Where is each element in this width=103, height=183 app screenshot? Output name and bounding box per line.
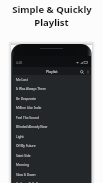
button[interactable]: Me Lost bbox=[13, 75, 91, 85]
staticText: Morning bbox=[16, 163, 29, 167]
staticText: Blinded Already Now bbox=[16, 125, 48, 129]
staticText: Feel The Sound bbox=[16, 116, 39, 120]
button[interactable]: More options bbox=[85, 69, 91, 75]
staticText: Playlist bbox=[34, 16, 69, 29]
button[interactable]: Blinded Already Now bbox=[13, 122, 91, 132]
staticText: Light bbox=[16, 135, 24, 139]
staticText: Saint Side bbox=[16, 154, 31, 158]
staticText: Me Lost bbox=[16, 78, 28, 82]
button[interactable]: Anthem Tells You bbox=[13, 179, 91, 183]
staticText: Anthem Tells You bbox=[16, 182, 42, 183]
button[interactable]: Of My Future bbox=[13, 141, 91, 151]
button[interactable]: Morning bbox=[13, 160, 91, 170]
staticText: Million Like Indie bbox=[16, 106, 42, 110]
button[interactable]: Slow It Down bbox=[13, 170, 91, 180]
button[interactable]: Light bbox=[13, 132, 91, 142]
staticText: 4:45 bbox=[16, 61, 23, 65]
button[interactable]: Be Desperate bbox=[13, 94, 91, 104]
button[interactable]: Million Like Indie bbox=[13, 103, 91, 113]
staticText: Slow It Down bbox=[16, 173, 36, 177]
staticText: Of My Future bbox=[16, 144, 36, 148]
staticText: It Was Always There bbox=[16, 87, 46, 91]
staticText: Simple & Quickly bbox=[12, 3, 92, 16]
button[interactable]: Search bbox=[78, 68, 85, 75]
staticText: Be Desperate bbox=[16, 97, 37, 101]
button[interactable]: It Was Always There bbox=[13, 84, 91, 94]
button[interactable]: Feel The Sound bbox=[13, 113, 91, 123]
staticText: Playlist bbox=[46, 69, 58, 74]
button[interactable]: Saint Side bbox=[13, 151, 91, 161]
